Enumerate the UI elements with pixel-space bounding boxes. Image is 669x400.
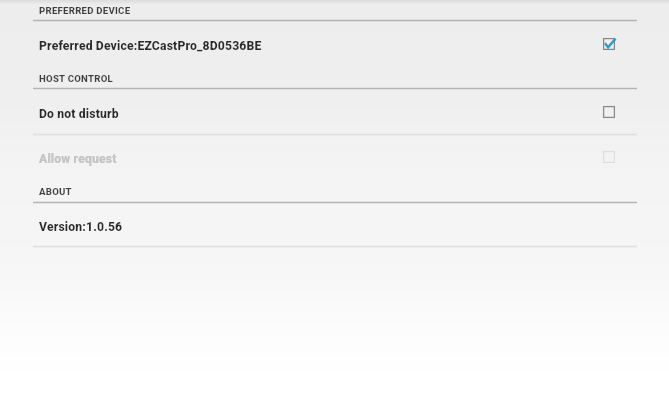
- staticText: Preferred Device:EZCastPro_8D0536BE: [39, 39, 262, 53]
- staticText: PREFERRED DEVICE: [39, 5, 131, 16]
- staticText: Version:1.0.56: [39, 220, 123, 234]
- staticText: HOST CONTROL: [39, 73, 113, 84]
- button[interactable]: Allow request checkbox: [593, 141, 625, 173]
- button[interactable]: Do not disturb: [0, 89, 669, 134]
- button[interactable]: Version:1.0.56: [0, 203, 669, 246]
- staticText: ABOUT: [39, 186, 72, 197]
- staticText: Allow request: [39, 152, 117, 166]
- button[interactable]: Allow request: [0, 135, 669, 181]
- button[interactable]: Do not disturb checkbox: [593, 96, 625, 128]
- button[interactable]: Preferred Device:EZCastPro_8D0536BE: [0, 21, 669, 67]
- button[interactable]: Preferred Device:EZCastPro_8D0536BE chec…: [593, 28, 625, 60]
- staticText: Do not disturb: [39, 107, 119, 121]
